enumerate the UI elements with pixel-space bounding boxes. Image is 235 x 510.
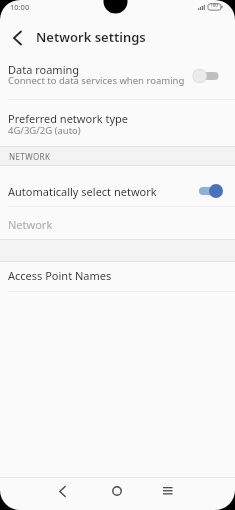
button[interactable] <box>0 22 36 54</box>
button[interactable] <box>150 478 186 506</box>
button[interactable]: Automatically select network <box>0 172 235 206</box>
button[interactable]: Preferred network type <box>0 104 235 145</box>
button[interactable] <box>45 478 81 506</box>
staticText: Preferred network type <box>8 111 128 126</box>
staticText: Network <box>8 217 53 232</box>
button[interactable]: Access Point Names <box>0 262 235 291</box>
staticText: Access Point Names <box>8 268 112 283</box>
staticText: 10:00 <box>10 2 30 12</box>
button[interactable]: Data roaming <box>0 56 235 98</box>
staticText: NETWORK <box>9 151 51 162</box>
staticText: 4G/3G/2G (auto) <box>8 124 81 137</box>
staticText: 100 <box>210 2 218 8</box>
button[interactable] <box>99 478 135 506</box>
staticText: Connect to data services when roaming <box>8 74 185 87</box>
staticText: Data roaming <box>8 62 80 77</box>
staticText: Network settings <box>36 28 146 46</box>
staticText: Automatically select network <box>8 184 157 199</box>
